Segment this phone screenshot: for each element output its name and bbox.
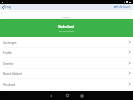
staticText: zoeken xyxy=(62,15,71,18)
staticText: Drenthe xyxy=(3,62,14,66)
staticText: In de buurt xyxy=(116,5,131,9)
button[interactable]: Back xyxy=(46,91,56,100)
button[interactable]: Groningen xyxy=(0,37,133,47)
button[interactable]: In de buurt xyxy=(112,4,133,10)
button[interactable]: Flevoland xyxy=(0,79,133,89)
button[interactable]: Fryslân xyxy=(0,47,133,57)
staticText: Noord-Holland xyxy=(3,72,22,76)
staticText: Terug xyxy=(4,5,12,9)
staticText: Nederland xyxy=(58,25,75,29)
staticText: Flevoland xyxy=(3,83,16,87)
button[interactable]: Home xyxy=(62,91,72,100)
button[interactable]: Recents xyxy=(77,91,87,100)
button[interactable]: Terug xyxy=(0,4,14,10)
button[interactable]: Noord-Holland xyxy=(0,68,133,78)
staticText: Groningen xyxy=(3,41,17,45)
staticText: Kies een provincie xyxy=(59,30,75,32)
staticText: Fryslân xyxy=(3,51,13,55)
button[interactable]: Drenthe xyxy=(0,58,133,68)
